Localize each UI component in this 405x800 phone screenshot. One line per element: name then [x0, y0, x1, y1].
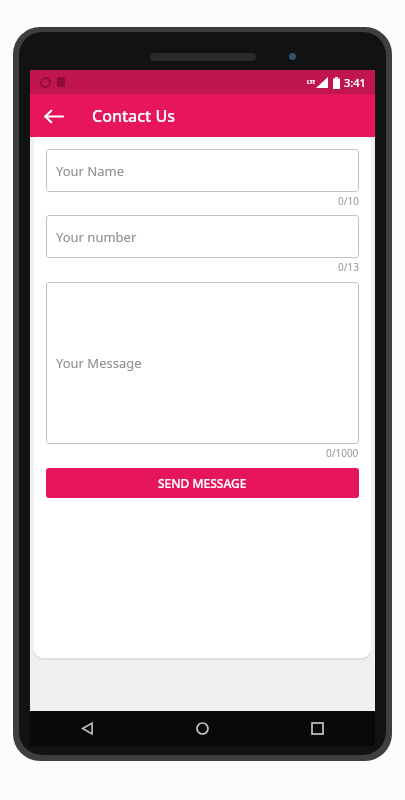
staticText: 0/13	[338, 260, 359, 274]
staticText: Contact Us	[92, 105, 175, 127]
button[interactable]: Your Message	[46, 282, 359, 444]
button[interactable]: Home	[145, 711, 260, 746]
staticText: Your number	[56, 228, 137, 246]
button[interactable]: SEND MESSAGE	[46, 468, 359, 498]
button[interactable]: Back	[30, 711, 145, 746]
button[interactable]: Your Name	[46, 149, 359, 192]
staticText: Your Message	[56, 354, 142, 372]
button[interactable]: Back	[35, 98, 71, 134]
staticText: LTE	[307, 79, 316, 86]
staticText: 0/10	[338, 194, 359, 208]
staticText: 0/1000	[326, 446, 359, 460]
staticText: Your Name	[56, 162, 125, 180]
staticText: 3:41	[344, 75, 366, 90]
button[interactable]: Recent apps	[260, 711, 375, 746]
button[interactable]: Your number	[46, 215, 359, 258]
staticText: SEND MESSAGE	[158, 475, 247, 491]
